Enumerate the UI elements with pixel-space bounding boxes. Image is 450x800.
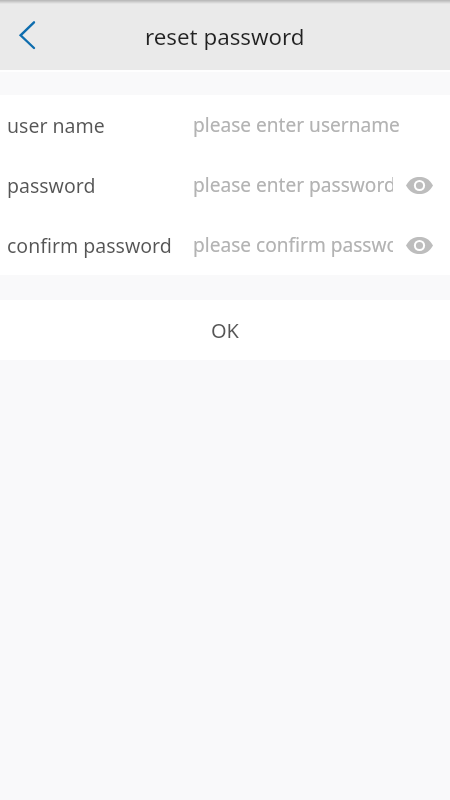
- staticText: reset password: [145, 21, 305, 51]
- staticText: OK: [211, 317, 239, 344]
- staticText: please confirm password: [193, 232, 393, 258]
- staticText: password: [7, 172, 96, 199]
- staticText: confirm password: [7, 232, 172, 259]
- button[interactable]: Show password: [395, 215, 443, 275]
- button[interactable]: Show password: [395, 155, 443, 215]
- button[interactable]: OK: [0, 300, 450, 360]
- button[interactable]: confirm password: [0, 215, 450, 275]
- staticText: user name: [7, 112, 105, 139]
- button[interactable]: user name: [0, 95, 450, 155]
- button[interactable]: password: [0, 155, 450, 215]
- button[interactable]: Back: [0, 0, 54, 70]
- staticText: please enter username: [193, 112, 400, 138]
- staticText: please enter password: [193, 172, 393, 198]
